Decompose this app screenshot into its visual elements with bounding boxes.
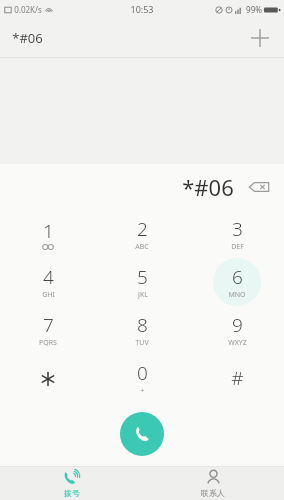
button[interactable]: 2 — [95, 210, 189, 258]
button[interactable]: Add contact — [246, 24, 274, 52]
button[interactable]: 0 — [95, 354, 189, 402]
staticText: 8 — [137, 312, 148, 338]
staticText: *#06 — [182, 172, 234, 202]
button[interactable]: Call — [120, 412, 164, 456]
staticText: 拨号 — [64, 488, 80, 498]
button[interactable]: 9 — [190, 306, 284, 354]
staticText: 10:53 — [130, 3, 154, 15]
staticText: 99% — [246, 4, 262, 15]
button[interactable]: 联系人 — [142, 467, 284, 500]
staticText: 1 — [43, 218, 54, 244]
staticText: 2 — [137, 216, 148, 242]
staticText: 3 — [232, 216, 243, 242]
button[interactable]: 8 — [95, 306, 189, 354]
staticText: MNO — [228, 290, 246, 300]
button[interactable]: Backspace — [246, 174, 272, 200]
button[interactable]: # — [190, 354, 284, 402]
button[interactable]: 1 — [1, 210, 95, 258]
staticText: 联系人 — [201, 488, 225, 498]
staticText: ABC — [135, 242, 149, 252]
staticText: PQRS — [39, 338, 57, 348]
staticText: GHI — [42, 290, 55, 300]
staticText: 4 — [43, 264, 54, 290]
staticText: DEF — [231, 242, 244, 252]
button[interactable]: 3 — [190, 210, 284, 258]
staticText: # — [231, 365, 244, 391]
button[interactable]: 7 — [1, 306, 95, 354]
staticText: WXYZ — [228, 338, 247, 348]
button[interactable] — [1, 354, 95, 402]
staticText: 5 — [137, 264, 148, 290]
button[interactable]: *#06 — [10, 25, 45, 51]
staticText: 7 — [43, 312, 54, 338]
button[interactable]: 6 — [190, 258, 284, 306]
staticText: JKL — [138, 290, 148, 300]
staticText: 0 — [137, 360, 148, 386]
staticText: 6 — [232, 264, 243, 290]
staticText: *#06 — [12, 29, 43, 47]
button[interactable]: 4 — [1, 258, 95, 306]
staticText: 9 — [232, 312, 243, 338]
staticText: TUV — [135, 338, 149, 348]
button[interactable]: 5 — [95, 258, 189, 306]
staticText: 0.02K/s — [14, 4, 42, 15]
staticText: + — [140, 386, 145, 396]
button[interactable]: 拨号 — [0, 467, 142, 500]
